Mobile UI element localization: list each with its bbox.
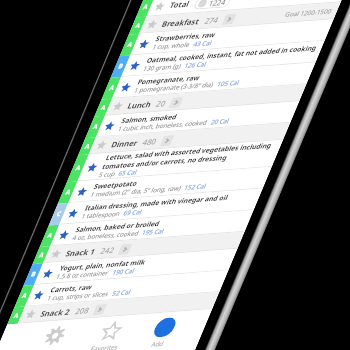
staticText: 5 cup [94,162,120,187]
staticText: 43 Cal [189,31,216,57]
staticText: 195 Cal [137,217,168,247]
button[interactable]: Lettuce, salad with assorted vegetables … [69,52,292,269]
staticText: 190 Cal [108,257,139,287]
staticText: Strawberries, raw [151,3,221,70]
staticText: 65 Cal [114,160,141,186]
button[interactable]: Carrots, raw [18,183,235,350]
staticText: A [80,140,94,153]
staticText: Breakfast [156,0,205,47]
staticText: 1 cup, strips or slices [42,262,113,331]
staticText: Pomegranate, raw [133,45,204,114]
button[interactable]: Sweetpotato [61,79,279,291]
staticText: Salmon, smoked [117,87,182,150]
staticText: Total [164,0,195,19]
staticText: A [123,38,137,52]
staticText: A [18,289,31,303]
staticText: 152 Cal [179,172,210,202]
button[interactable]: Yogurt, plain, nonfat milk [27,161,244,350]
staticText: Snack 1 [60,233,101,272]
staticText: 242 [95,239,120,263]
staticText: 1 cubic inch, boneless, cooked [113,78,212,174]
staticText: A [34,249,48,262]
staticText: A [131,19,145,33]
staticText: 52 Cal [108,280,135,306]
staticText: Snack 2 [35,293,76,333]
staticText: B [27,268,40,281]
button[interactable]: Breakfast [134,0,346,122]
button[interactable]: Salmon, baked or broiled [43,122,261,334]
staticText: 4 oz, boneless, cooked [68,199,143,273]
staticText: 20 Cal [206,109,233,135]
button[interactable]: Snack 1 [38,144,250,350]
staticText: 69 Cal [119,200,146,226]
staticText: A [105,81,119,95]
staticText: Yogurt, plain, nonfat milk [55,219,150,311]
staticText: 130 gram (g) [139,45,186,91]
button[interactable]: Favorites [77,303,143,350]
staticText: Thursday [271,0,318,19]
staticText: 1224 [204,0,231,15]
button[interactable]: Snack 2 [12,204,225,350]
staticText: 1 tablespoon [77,192,125,239]
staticText: Carrots, raw [46,264,97,313]
staticText: A [9,309,23,323]
button[interactable]: Strawberries, raw [123,0,341,143]
staticText: Oatmeal, cooked, instant, fat not added … [142,0,321,141]
staticText: 1 medium (2" dia, 5" long, raw) [86,143,185,240]
staticText: Lettuce, salad with assorted vegetables … [95,66,279,245]
button[interactable]: Pomegranate, raw [105,0,322,186]
staticText: Lunch [122,89,157,122]
staticText: A [71,162,85,175]
staticText: Dec 14 [313,0,343,8]
button[interactable]: Add [134,302,193,350]
staticText: 20 [151,94,171,113]
staticText: 480 [137,130,162,154]
button[interactable]: Italian dressing, made with vinegar and … [52,101,270,312]
staticText: Dinner [106,126,143,162]
button[interactable]: Dinner [83,35,296,242]
staticText: Add [147,334,169,350]
staticText: Sweetpotato [90,159,142,210]
staticText: A [88,120,102,134]
staticText: 274 [199,9,224,32]
staticText: 105 Cal [213,69,243,99]
staticText: A [61,186,75,199]
button[interactable]: Lunch [99,0,312,203]
staticText: Goal 1200-1500 [281,0,336,40]
staticText: Settings [31,336,64,350]
staticText: A [43,229,57,242]
staticText: Salmon, baked or broiled [71,181,165,272]
staticText: 1 pomegranate (3-3/8" dia) [130,45,218,131]
staticText: Favorites [86,331,122,350]
staticText: B [114,60,128,73]
staticText: 1 cup, whole [148,23,195,69]
button[interactable]: Settings [22,309,85,350]
button[interactable]: Oatmeal, cooked, instant, fat not added … [114,0,331,165]
button[interactable]: Salmon, smoked [89,13,306,225]
staticText: A [96,101,110,115]
staticText: 208 [70,299,95,323]
staticText: 126 Cal [180,50,211,80]
staticText: 1.5 8 oz container [51,245,114,305]
staticText: Italian dressing, made with vinegar and … [81,128,233,277]
staticText: C [52,207,66,221]
staticText: A [139,0,152,14]
